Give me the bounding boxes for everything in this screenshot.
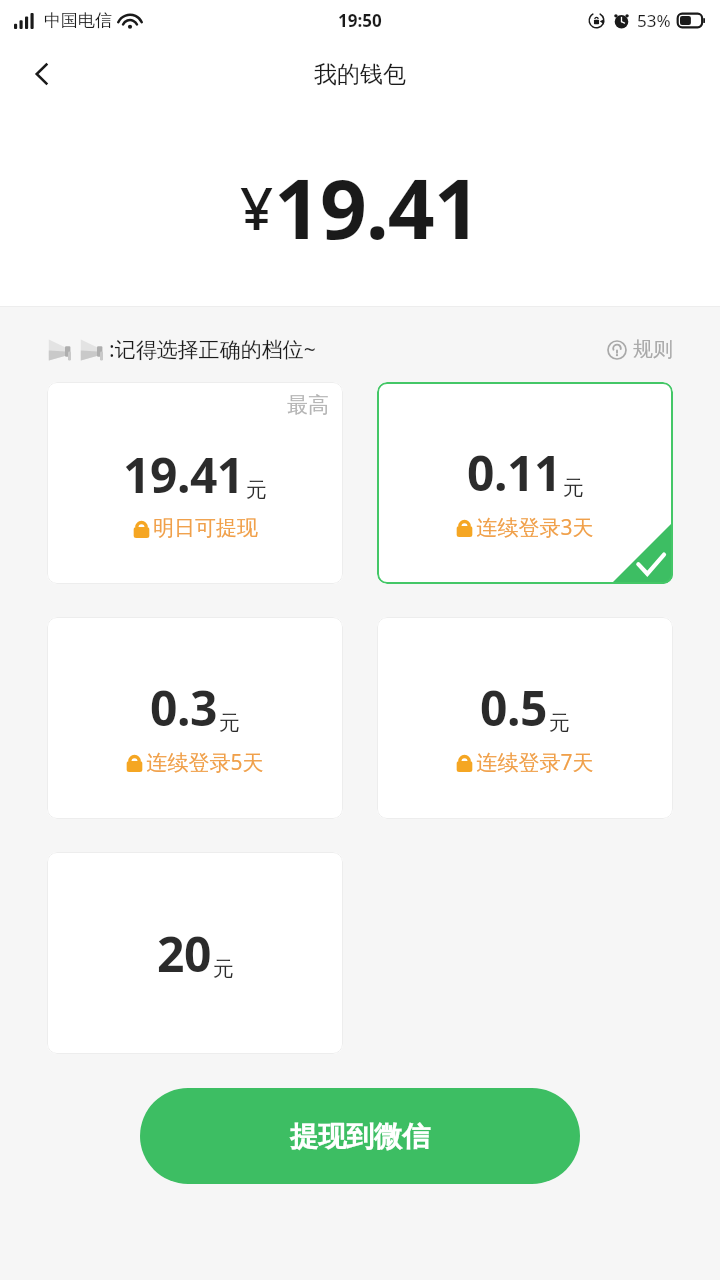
staticText: 0.5 bbox=[480, 675, 547, 740]
button[interactable]: 0.5 bbox=[377, 617, 673, 819]
staticText: 19.41 bbox=[274, 151, 480, 263]
button[interactable]: 最高 bbox=[47, 382, 343, 584]
staticText: 19:50 bbox=[338, 9, 382, 32]
staticText: 元 bbox=[563, 475, 584, 501]
staticText: 明日可提现 bbox=[153, 515, 258, 541]
button[interactable]: 0.11 bbox=[377, 382, 673, 584]
staticText: 53% bbox=[637, 9, 671, 32]
staticText: 元 bbox=[549, 710, 570, 736]
staticText: 连续登录7天 bbox=[476, 748, 594, 777]
staticText: 元 bbox=[219, 710, 240, 736]
staticText: 元 bbox=[246, 477, 267, 503]
staticText: 连续登录5天 bbox=[146, 748, 264, 777]
staticText: 19.41 bbox=[123, 442, 244, 507]
staticText: 规则 bbox=[633, 337, 673, 362]
button[interactable]: 20 bbox=[47, 852, 343, 1054]
button[interactable]: 规则 bbox=[607, 337, 673, 362]
button[interactable]: Back bbox=[14, 46, 70, 102]
staticText: 提现到微信 bbox=[290, 1119, 430, 1154]
button[interactable]: 提现到微信 bbox=[140, 1088, 580, 1184]
button[interactable]: 0.3 bbox=[47, 617, 343, 819]
staticText: 中国电信 bbox=[44, 10, 112, 31]
staticText: 连续登录3天 bbox=[476, 513, 594, 542]
staticText: 最高 bbox=[287, 392, 329, 418]
staticText: 我的钱包 bbox=[314, 60, 406, 89]
staticText: 20 bbox=[157, 921, 211, 986]
staticText: 0.11 bbox=[467, 440, 561, 505]
staticText: 0.3 bbox=[150, 675, 217, 740]
staticText: ¥ bbox=[240, 168, 274, 247]
staticText: :记得选择正确的档位~ bbox=[109, 335, 316, 364]
staticText: 元 bbox=[213, 956, 234, 982]
